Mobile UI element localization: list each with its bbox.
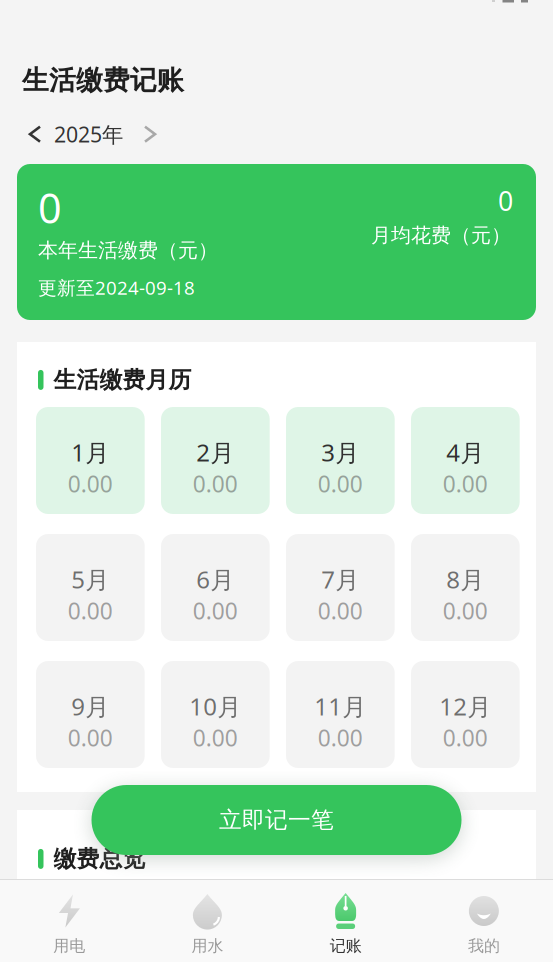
button[interactable]: 用水 — [138, 893, 276, 956]
button[interactable]: 下一年 — [145, 127, 155, 142]
staticText: 8月 — [446, 563, 484, 595]
button[interactable]: 3月 — [286, 407, 395, 514]
staticText: 0.00 — [318, 596, 363, 626]
staticText: 用电 — [53, 936, 85, 956]
staticText: 0 — [38, 180, 62, 235]
staticText: 月均花费（元） — [371, 223, 511, 248]
staticText: 2月 — [196, 436, 234, 468]
staticText: 10月 — [189, 690, 241, 722]
button[interactable]: 6月 — [161, 534, 270, 641]
staticText: 0 — [498, 183, 513, 218]
button[interactable]: 上一年 — [30, 127, 40, 142]
staticText: 0.00 — [193, 469, 238, 499]
staticText: 4月 — [446, 436, 484, 468]
button[interactable]: 10月 — [161, 661, 270, 768]
staticText: 0.00 — [443, 469, 488, 499]
button[interactable]: 12月 — [411, 661, 520, 768]
staticText: 2025年 — [54, 120, 123, 148]
staticText: 0.00 — [68, 723, 113, 753]
button[interactable]: 1月 — [36, 407, 145, 514]
staticText: 6月 — [196, 563, 234, 595]
button[interactable]: 记账 — [276, 893, 415, 956]
button[interactable]: 5月 — [36, 534, 145, 641]
button[interactable]: 7月 — [286, 534, 395, 641]
staticText: 1月 — [71, 436, 109, 468]
button[interactable]: 8月 — [411, 534, 520, 641]
staticText: 0.00 — [318, 469, 363, 499]
staticText: 0.00 — [68, 469, 113, 499]
staticText: 0.00 — [443, 723, 488, 753]
button[interactable]: 4月 — [411, 407, 520, 514]
staticText: 0.00 — [193, 596, 238, 626]
button[interactable]: 9月 — [36, 661, 145, 768]
button[interactable]: 用电 — [0, 893, 138, 956]
staticText: 我的 — [468, 936, 500, 956]
staticText: 7月 — [321, 563, 359, 595]
button[interactable]: 2月 — [161, 407, 270, 514]
staticText: 生活缴费记账 — [22, 64, 184, 97]
staticText: 5月 — [71, 563, 109, 595]
staticText: 9月 — [71, 690, 109, 722]
staticText: 12月 — [439, 690, 491, 722]
button[interactable]: 立即记一笔 — [91, 785, 461, 855]
staticText: 更新至2024-09-18 — [38, 275, 195, 300]
button[interactable]: 11月 — [286, 661, 395, 768]
staticText: 本年生活缴费（元） — [38, 238, 218, 263]
staticText: 用水 — [191, 936, 223, 956]
staticText: 立即记一笔 — [219, 806, 334, 834]
staticText: 缴费总览 — [53, 845, 145, 873]
staticText: 0.00 — [318, 723, 363, 753]
staticText: 记账 — [330, 936, 362, 956]
staticText: 0.00 — [193, 723, 238, 753]
staticText: 生活缴费月历 — [53, 366, 191, 394]
staticText: 0.00 — [68, 596, 113, 626]
staticText: 11月 — [314, 690, 366, 722]
staticText: 3月 — [321, 436, 359, 468]
button[interactable]: 我的 — [415, 893, 553, 956]
staticText: 0.00 — [443, 596, 488, 626]
